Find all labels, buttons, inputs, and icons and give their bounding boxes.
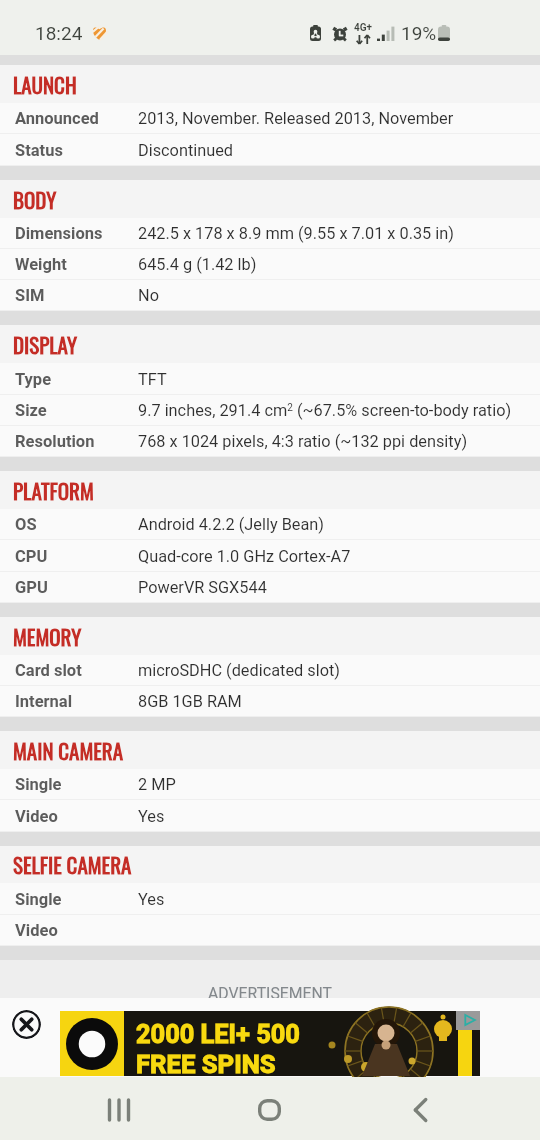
staticText: Yes <box>138 807 165 826</box>
staticText: Status <box>15 141 63 160</box>
staticText: LAUNCH <box>13 69 77 100</box>
staticText: 18:24 <box>35 22 83 44</box>
staticText: Announced <box>15 109 99 128</box>
staticText: Yes <box>138 890 165 909</box>
button[interactable]: Type <box>0 363 540 395</box>
button[interactable]: MEMORY <box>0 617 540 655</box>
staticText: No <box>138 286 159 305</box>
button[interactable]: OS <box>0 509 540 540</box>
staticText: MEMORY <box>13 621 82 652</box>
staticText: 242.5 x 178 x 8.9 mm (9.55 x 7.01 x 0.35… <box>138 224 454 243</box>
staticText: DISPLAY <box>13 329 78 360</box>
staticText: Video <box>15 921 58 940</box>
button[interactable]: MAIN CAMERA <box>0 731 540 769</box>
button[interactable]: Dimensions <box>0 218 540 249</box>
staticText: 768 x 1024 pixels, 4:3 ratio (~132 ppi d… <box>138 432 468 451</box>
staticText: 4G+ <box>354 22 373 34</box>
button[interactable]: Home <box>255 1095 284 1124</box>
button[interactable]: SIM <box>0 280 540 311</box>
staticText: Size <box>15 401 47 420</box>
button[interactable]: CPU <box>0 540 540 572</box>
staticText: TFT <box>138 370 167 389</box>
staticText: Discontinued <box>138 141 234 160</box>
staticText: Quad-core 1.0 GHz Cortex-A7 <box>138 547 351 566</box>
staticText: 8GB 1GB RAM <box>138 692 242 711</box>
button[interactable]: Single <box>0 769 540 800</box>
staticText: MAIN CAMERA <box>13 735 124 766</box>
staticText: SELFIE CAMERA <box>13 849 132 880</box>
staticText: OS <box>15 515 37 534</box>
staticText: Type <box>15 370 52 389</box>
staticText: Single <box>15 775 62 794</box>
staticText: 9.7 inches, 291.4 cm2 (~67.5% screen-to-… <box>138 401 512 420</box>
staticText: Dimensions <box>15 224 103 243</box>
staticText: Internal <box>15 692 73 711</box>
staticText: Video <box>15 807 58 826</box>
staticText: PLATFORM <box>13 475 94 506</box>
staticText: Resolution <box>15 432 95 451</box>
button[interactable]: Resolution <box>0 426 540 457</box>
button[interactable]: Weight <box>0 249 540 280</box>
button[interactable]: Close advertisement <box>12 1010 41 1039</box>
staticText: BODY <box>13 184 57 215</box>
staticText: 2000 LEI+ 500 <box>136 1019 300 1049</box>
button[interactable]: DISPLAY <box>0 325 540 363</box>
staticText: Card slot <box>15 661 82 680</box>
button[interactable]: Video <box>0 800 540 832</box>
button[interactable]: Video <box>0 915 540 946</box>
staticText: 2013, November. Released 2013, November <box>138 109 454 128</box>
button[interactable]: GPU <box>0 572 540 603</box>
staticText: microSDHC (dedicated slot) <box>138 661 340 680</box>
staticText: SIM <box>15 286 45 305</box>
button[interactable]: Card slot <box>0 655 540 686</box>
button[interactable]: PLATFORM <box>0 471 540 509</box>
staticText: CPU <box>15 547 48 566</box>
button[interactable]: SELFIE CAMERA <box>0 846 540 883</box>
button[interactable]: Internal <box>0 686 540 717</box>
button[interactable]: Advertisement banner <box>60 1011 480 1076</box>
staticText: PowerVR SGX544 <box>138 578 267 597</box>
button[interactable]: LAUNCH <box>0 65 540 103</box>
staticText: 645.4 g (1.42 lb) <box>138 255 257 274</box>
staticText: 19% <box>401 22 437 44</box>
staticText: Weight <box>15 255 67 274</box>
button[interactable]: Announced <box>0 103 540 134</box>
button[interactable]: Recent apps <box>104 1095 133 1124</box>
staticText: ADVERTISEMENT <box>208 984 332 1003</box>
button[interactable]: Status <box>0 134 540 166</box>
staticText: Single <box>15 890 62 909</box>
staticText: 2 MP <box>138 775 176 794</box>
button[interactable]: Single <box>0 883 540 915</box>
button[interactable]: BODY <box>0 180 540 218</box>
button[interactable]: Size <box>0 395 540 426</box>
staticText: FREE SPINS <box>136 1049 276 1079</box>
staticText: GPU <box>15 578 48 597</box>
button[interactable]: Back <box>406 1095 435 1124</box>
staticText: Android 4.2.2 (Jelly Bean) <box>138 515 325 534</box>
